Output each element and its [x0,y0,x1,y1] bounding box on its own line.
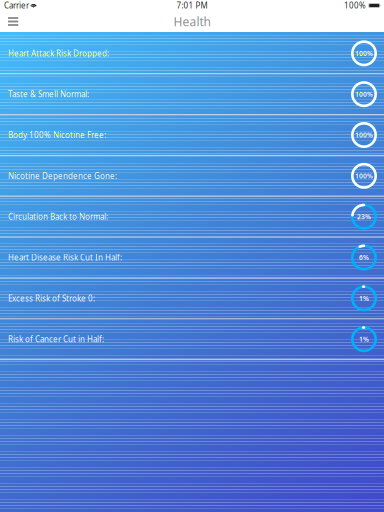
staticText: 1% [359,335,369,344]
staticText: 100% [344,0,366,11]
staticText: 7:01 PM [176,0,207,11]
button[interactable]: Excess Risk of Stroke 0: [0,278,384,318]
button[interactable]: Nicotine Dependence Gone: [0,156,384,196]
staticText: Circulation Back to Normal: [8,211,108,222]
staticText: Body 100% Nicotine Free: [8,130,106,140]
staticText: 23% [357,212,371,221]
button[interactable]: Menu [0,11,28,32]
staticText: Nicotine Dependence Gone: [8,170,117,181]
staticText: 100% [355,49,373,58]
staticText: Taste & Smell Normal: [8,89,89,99]
staticText: Carrier [4,0,29,11]
staticText: Risk of Cancer Cut in Half: [8,334,104,344]
staticText: 100% [355,90,373,99]
staticText: Heart Attack Risk Dropped: [8,48,109,59]
button[interactable]: Heart Disease Risk Cut In Half: [0,238,384,277]
staticText: 1% [359,294,369,303]
button[interactable]: Heart Attack Risk Dropped: [0,33,384,73]
staticText: 100% [355,171,373,180]
button[interactable]: Circulation Back to Normal: [0,197,384,237]
staticText: Health [173,13,210,29]
staticText: 6% [359,253,369,262]
staticText: Heart Disease Risk Cut In Half: [8,252,122,263]
button[interactable]: Taste & Smell Normal: [0,74,384,114]
staticText: 100% [355,131,373,139]
button[interactable]: Risk of Cancer Cut in Half: [0,319,384,359]
button[interactable]: Body 100% Nicotine Free: [0,115,384,155]
staticText: Excess Risk of Stroke 0: [8,293,95,304]
